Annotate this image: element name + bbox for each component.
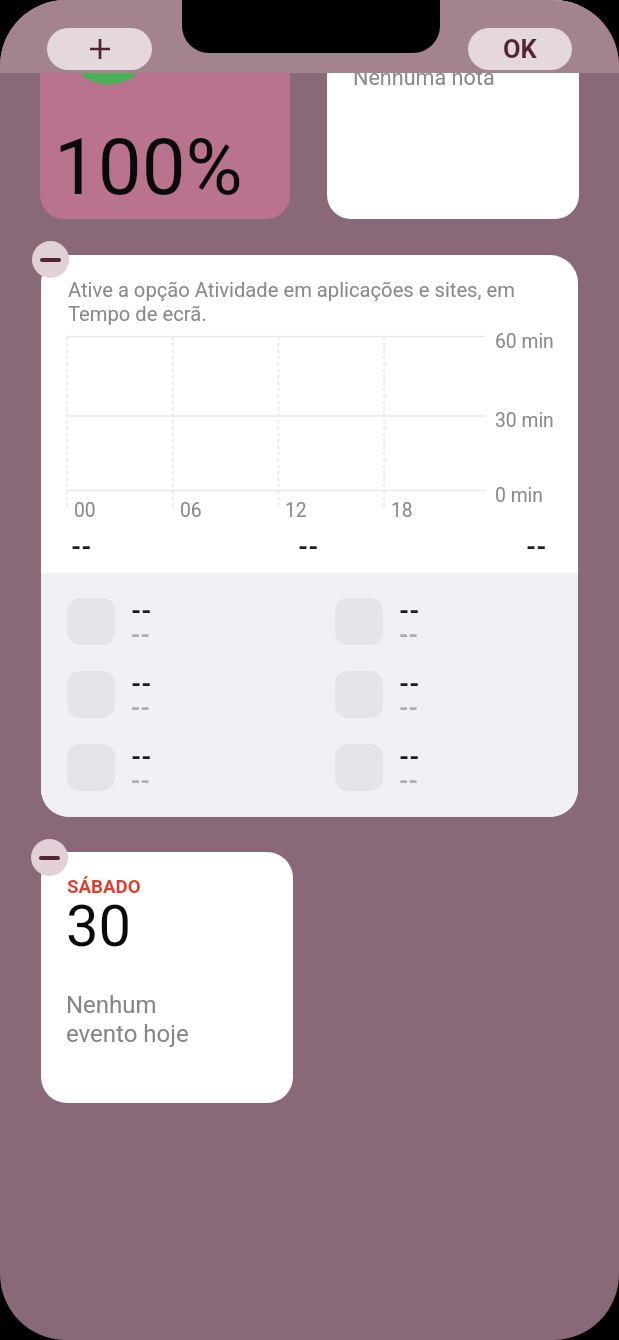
button[interactable]: SÁBADO [41, 852, 293, 1103]
staticText: 30 min [495, 409, 554, 432]
button[interactable]: -- [67, 744, 297, 799]
staticText: 00 [74, 499, 96, 522]
staticText: -- [399, 621, 418, 649]
staticText: -- [131, 767, 150, 795]
staticText: -- [131, 621, 150, 649]
staticText: -- [71, 532, 92, 562]
staticText: -- [399, 767, 418, 795]
button[interactable]: -- [335, 744, 565, 799]
staticText: 100% [54, 122, 243, 213]
staticText: -- [131, 742, 152, 772]
staticText: -- [399, 694, 418, 722]
button[interactable]: -- [67, 598, 297, 653]
staticText: Nenhuma nota [353, 65, 495, 90]
button[interactable]: Ative a opção Atividade em aplicações e … [41, 255, 578, 817]
button[interactable]: -- [67, 671, 297, 726]
staticText: 06 [180, 499, 202, 522]
staticText: SÁBADO [67, 876, 141, 898]
button[interactable]: Adicionar widget [47, 28, 152, 70]
staticText: OK [503, 34, 537, 64]
staticText: -- [526, 532, 547, 562]
staticText: -- [131, 596, 152, 626]
staticText: 0 min [495, 484, 543, 507]
staticText: -- [131, 669, 152, 699]
button[interactable]: Remover widget [31, 839, 68, 876]
staticText: -- [131, 694, 150, 722]
button[interactable]: Remover widget [32, 241, 69, 278]
button[interactable]: -- [335, 598, 565, 653]
staticText: 18 [391, 499, 413, 522]
staticText: Ative a opção Atividade em aplicações e … [68, 278, 515, 326]
button[interactable]: OK [468, 28, 572, 70]
staticText: -- [399, 742, 420, 772]
staticText: Nenhum evento hoje [66, 991, 189, 1048]
staticText: -- [399, 669, 420, 699]
staticText: 30 [66, 892, 132, 960]
staticText: 60 min [495, 330, 554, 353]
staticText: -- [399, 596, 420, 626]
staticText: 12 [285, 499, 307, 522]
button[interactable]: -- [335, 671, 565, 726]
button[interactable]: 100% [40, 0, 290, 219]
staticText: -- [298, 532, 319, 562]
button[interactable]: Nenhuma nota [327, 0, 579, 219]
